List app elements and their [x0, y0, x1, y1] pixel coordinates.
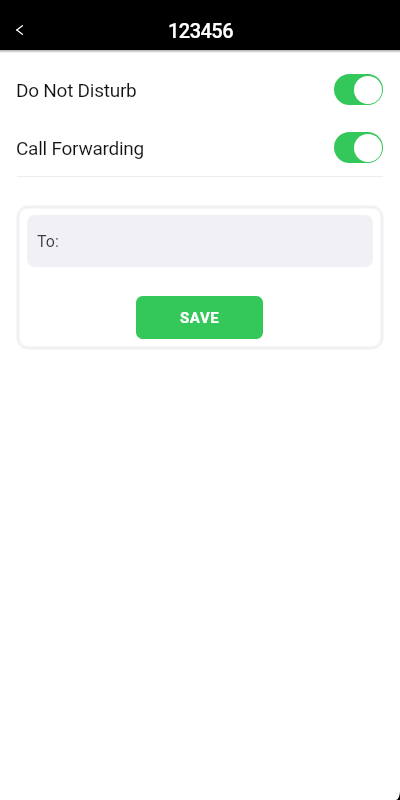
button[interactable]: Call Forwarding [0, 132, 400, 163]
button[interactable]: To: [27, 215, 373, 267]
staticText: Do Not Disturb [16, 79, 137, 101]
staticText: Call Forwarding [16, 137, 145, 159]
staticText: SAVE [180, 309, 220, 327]
button[interactable]: Back [0, 10, 40, 50]
button[interactable]: SAVE [136, 296, 263, 339]
staticText: 123456 [168, 19, 233, 42]
staticText: To: [37, 232, 59, 251]
button[interactable]: Do Not Disturb [0, 74, 400, 105]
